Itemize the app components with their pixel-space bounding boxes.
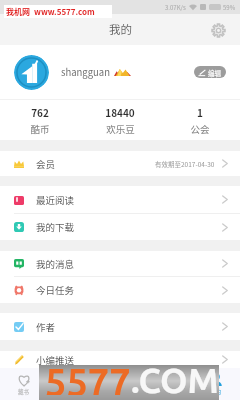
button[interactable]: 最近阅读 (0, 186, 240, 213)
staticText: shangguan (61, 65, 110, 79)
staticText: 书城 (66, 388, 78, 396)
staticText: 小编推送 (36, 353, 75, 367)
button[interactable]: 书城 (48, 368, 96, 400)
button[interactable]: Settings (207, 19, 229, 41)
button[interactable]: 我的消息 (0, 251, 240, 276)
staticText: 酷币 (30, 122, 50, 136)
staticText: 1 (197, 105, 203, 119)
staticText: www.5577.com (34, 6, 95, 18)
button[interactable]: 发现 (96, 368, 144, 400)
button[interactable]: 18440 (80, 100, 160, 140)
staticText: 公会 (190, 122, 210, 136)
button[interactable]: 今日任务 (0, 277, 240, 303)
button[interactable]: 762 (0, 100, 80, 140)
staticText: 我的消息 (36, 257, 75, 271)
staticText: 今日任务 (36, 283, 75, 297)
button[interactable]: 书友 (144, 368, 192, 400)
staticText: 762 (31, 105, 49, 119)
staticText: 59% (223, 3, 236, 12)
staticText: 会员 (36, 157, 56, 171)
staticText: .COM (131, 360, 219, 395)
staticText: 藏书 (18, 388, 30, 396)
staticText: 书友 (162, 388, 174, 396)
button[interactable]: 编辑 (194, 66, 226, 78)
staticText: 我的 (210, 388, 222, 396)
staticText: 3.07K/s (165, 3, 186, 12)
button[interactable]: 1 (160, 100, 240, 140)
button[interactable]: Avatar (14, 55, 49, 90)
staticText: 有效期至2017-04-30 (155, 159, 215, 168)
staticText: 编辑 (208, 68, 221, 77)
staticText: 我的下载 (36, 220, 75, 234)
button[interactable]: 我的 (192, 368, 240, 400)
button[interactable]: 小编推送 (0, 351, 240, 368)
button[interactable]: 作者 (0, 313, 240, 340)
staticText: 5577 (45, 360, 131, 395)
button[interactable]: 我的下载 (0, 214, 240, 240)
button[interactable]: 藏书 (0, 368, 48, 400)
staticText: 我的 (109, 21, 132, 38)
staticText: 发现 (114, 388, 126, 396)
staticText: 我机网 (6, 6, 30, 18)
staticText: 作者 (36, 320, 56, 334)
staticText: 最近阅读 (36, 193, 75, 207)
staticText: 18440 (105, 105, 135, 119)
button[interactable]: 会员 (0, 151, 240, 176)
staticText: 欢乐豆 (106, 122, 135, 136)
